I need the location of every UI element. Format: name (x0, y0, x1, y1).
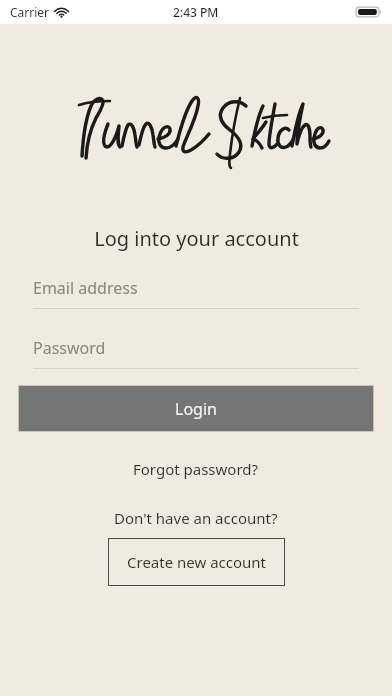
button[interactable]: Email address (33, 277, 359, 309)
staticText: Don't have an account? (114, 508, 278, 528)
staticText: Forgot password? (133, 459, 259, 479)
button[interactable]: Forgot password? (125, 457, 267, 481)
staticText: Email address (33, 277, 138, 299)
staticText: Password (33, 337, 106, 359)
button[interactable]: Password (33, 337, 359, 369)
staticText: Create new account (127, 552, 266, 572)
button[interactable]: Login (18, 385, 374, 432)
other: Funnel Sketchers (70, 84, 330, 170)
staticText: 2:43 PM (173, 4, 219, 20)
staticText: Login (175, 398, 217, 420)
staticText: Carrier (10, 4, 50, 20)
staticText: Log into your account (94, 225, 299, 252)
button[interactable]: Create new account (108, 538, 285, 586)
